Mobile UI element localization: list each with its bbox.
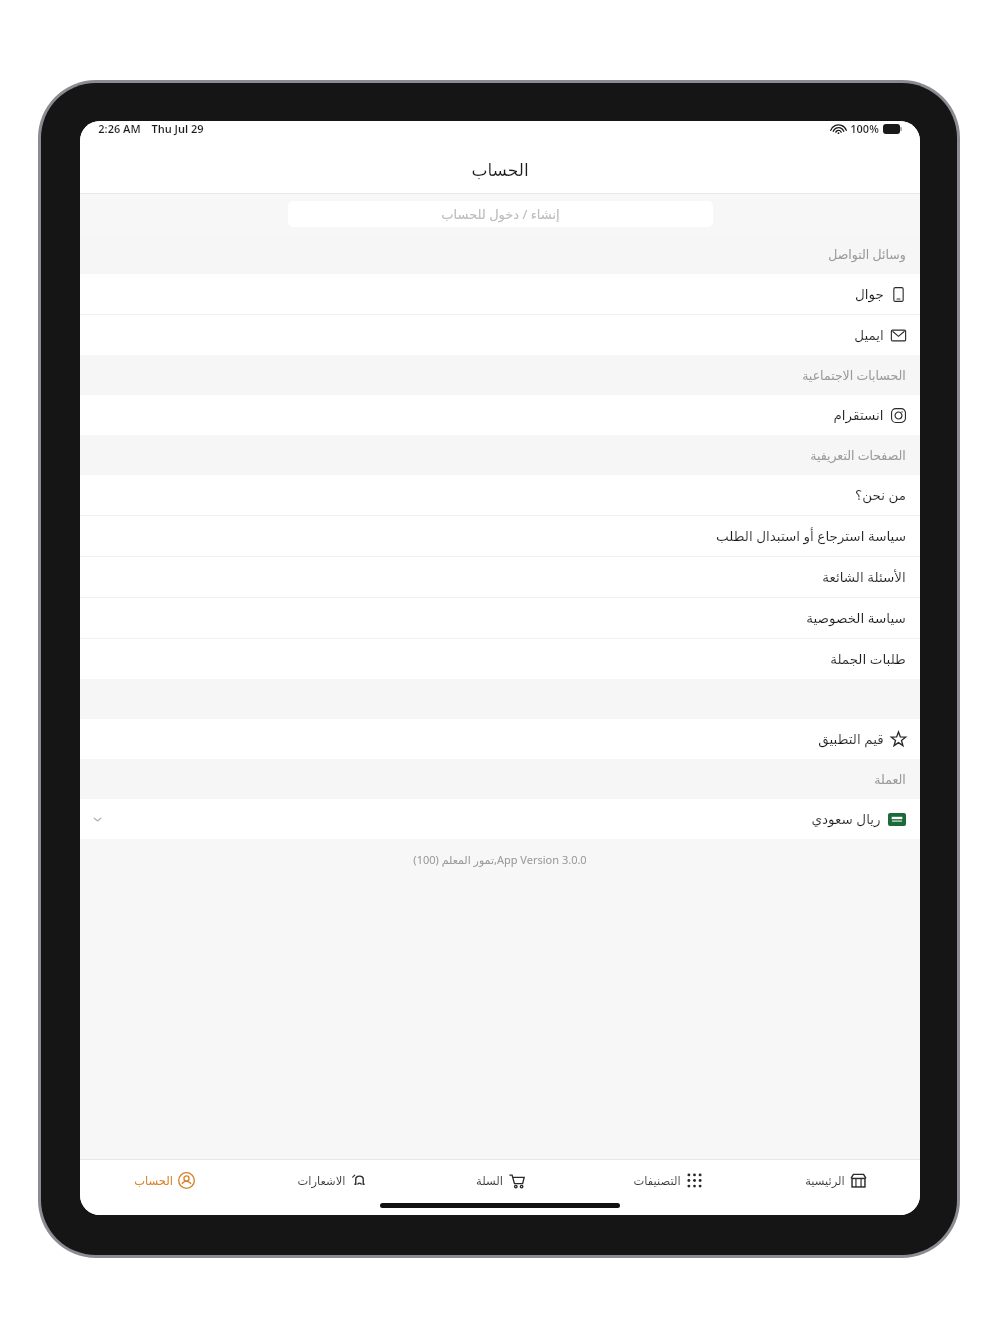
other: Home — [850, 1172, 867, 1189]
button[interactable]: من نحن؟ — [80, 475, 920, 515]
staticText: قيم التطبيق — [818, 730, 884, 748]
staticText: الصفحات التعريفية — [810, 447, 906, 464]
button[interactable]: السلة — [416, 1160, 584, 1200]
button[interactable]: إنشاء / دخول للحساب — [288, 201, 713, 227]
button[interactable]: التصنيفات — [584, 1160, 752, 1200]
other: Phone — [891, 287, 906, 302]
button[interactable]: الاشعارات — [248, 1160, 416, 1200]
staticText: Thu Jul 29 — [151, 121, 204, 136]
staticText: الحساب — [471, 160, 529, 180]
staticText: سياسة استرجاع أو استبدال الطلب — [716, 527, 906, 545]
other: Instagram — [891, 408, 906, 423]
staticText: السلة — [476, 1174, 503, 1187]
button[interactable]: الأسئلة الشائعة — [80, 557, 920, 597]
staticText: جوال — [855, 286, 884, 302]
button[interactable]: سياسة الخصوصية — [80, 598, 920, 638]
staticText: ريال سعودي — [811, 810, 881, 828]
button[interactable]: جوال — [80, 274, 920, 314]
staticText: طلبات الجملة — [830, 650, 906, 668]
other: Cart — [508, 1172, 525, 1189]
staticText: العملة — [874, 772, 906, 787]
other: Email — [891, 328, 906, 343]
staticText: من نحن؟ — [855, 486, 906, 504]
staticText: الرئيسية — [805, 1174, 845, 1187]
staticText: ايميل — [854, 327, 884, 343]
button[interactable]: طلبات الجملة — [80, 639, 920, 679]
staticText: الاشعارات — [297, 1174, 346, 1187]
staticText: 2:26 AM — [98, 121, 141, 136]
other: Categories — [686, 1172, 703, 1189]
staticText: 100% — [850, 121, 879, 136]
staticText: إنشاء / دخول للحساب — [441, 205, 560, 223]
staticText: سياسة الخصوصية — [806, 609, 906, 627]
staticText: الحسابات الاجتماعية — [802, 367, 906, 384]
button[interactable]: سياسة استرجاع أو استبدال الطلب — [80, 516, 920, 556]
staticText: التصنيفات — [633, 1174, 681, 1187]
button[interactable]: الرئيسية — [752, 1160, 920, 1200]
staticText: الأسئلة الشائعة — [822, 568, 906, 586]
other: Expand — [92, 814, 103, 825]
button[interactable]: انستقرام — [80, 395, 920, 435]
button[interactable]: Expand — [80, 799, 920, 839]
staticText: تمور المعلم (100),App Version 3.0.0 — [413, 852, 587, 867]
button[interactable]: قيم التطبيق — [80, 719, 920, 759]
staticText: وسائل التواصل — [828, 246, 906, 263]
button[interactable]: الحساب — [80, 1160, 248, 1200]
other: Notifications — [351, 1172, 368, 1189]
other: Account — [178, 1172, 195, 1189]
staticText: انستقرام — [833, 407, 884, 423]
button[interactable]: ايميل — [80, 315, 920, 355]
staticText: الحساب — [134, 1174, 173, 1187]
other: Rate app — [891, 732, 906, 747]
